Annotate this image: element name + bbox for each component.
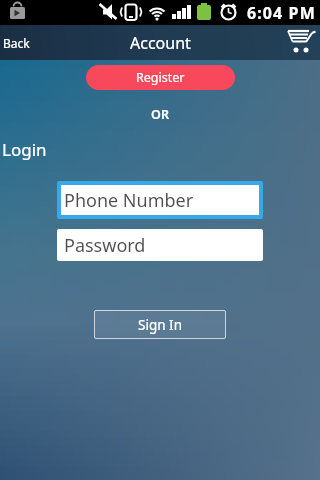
button[interactable]: Register: [86, 65, 235, 90]
button[interactable]: Phone Number: [57, 181, 263, 219]
button[interactable]: Sign In: [94, 310, 226, 339]
staticText: Register: [136, 69, 185, 86]
staticText: 6:04 PM: [247, 2, 316, 24]
staticText: Account: [130, 32, 191, 54]
button[interactable]: [286, 26, 320, 60]
button[interactable]: Back: [0, 35, 38, 51]
button[interactable]: Password: [57, 229, 263, 261]
staticText: Phone Number: [64, 188, 194, 213]
staticText: Login: [2, 138, 47, 161]
staticText: Password: [64, 233, 146, 258]
staticText: OR: [0, 106, 320, 123]
staticText: Back: [3, 35, 30, 51]
staticText: Sign In: [138, 316, 182, 334]
